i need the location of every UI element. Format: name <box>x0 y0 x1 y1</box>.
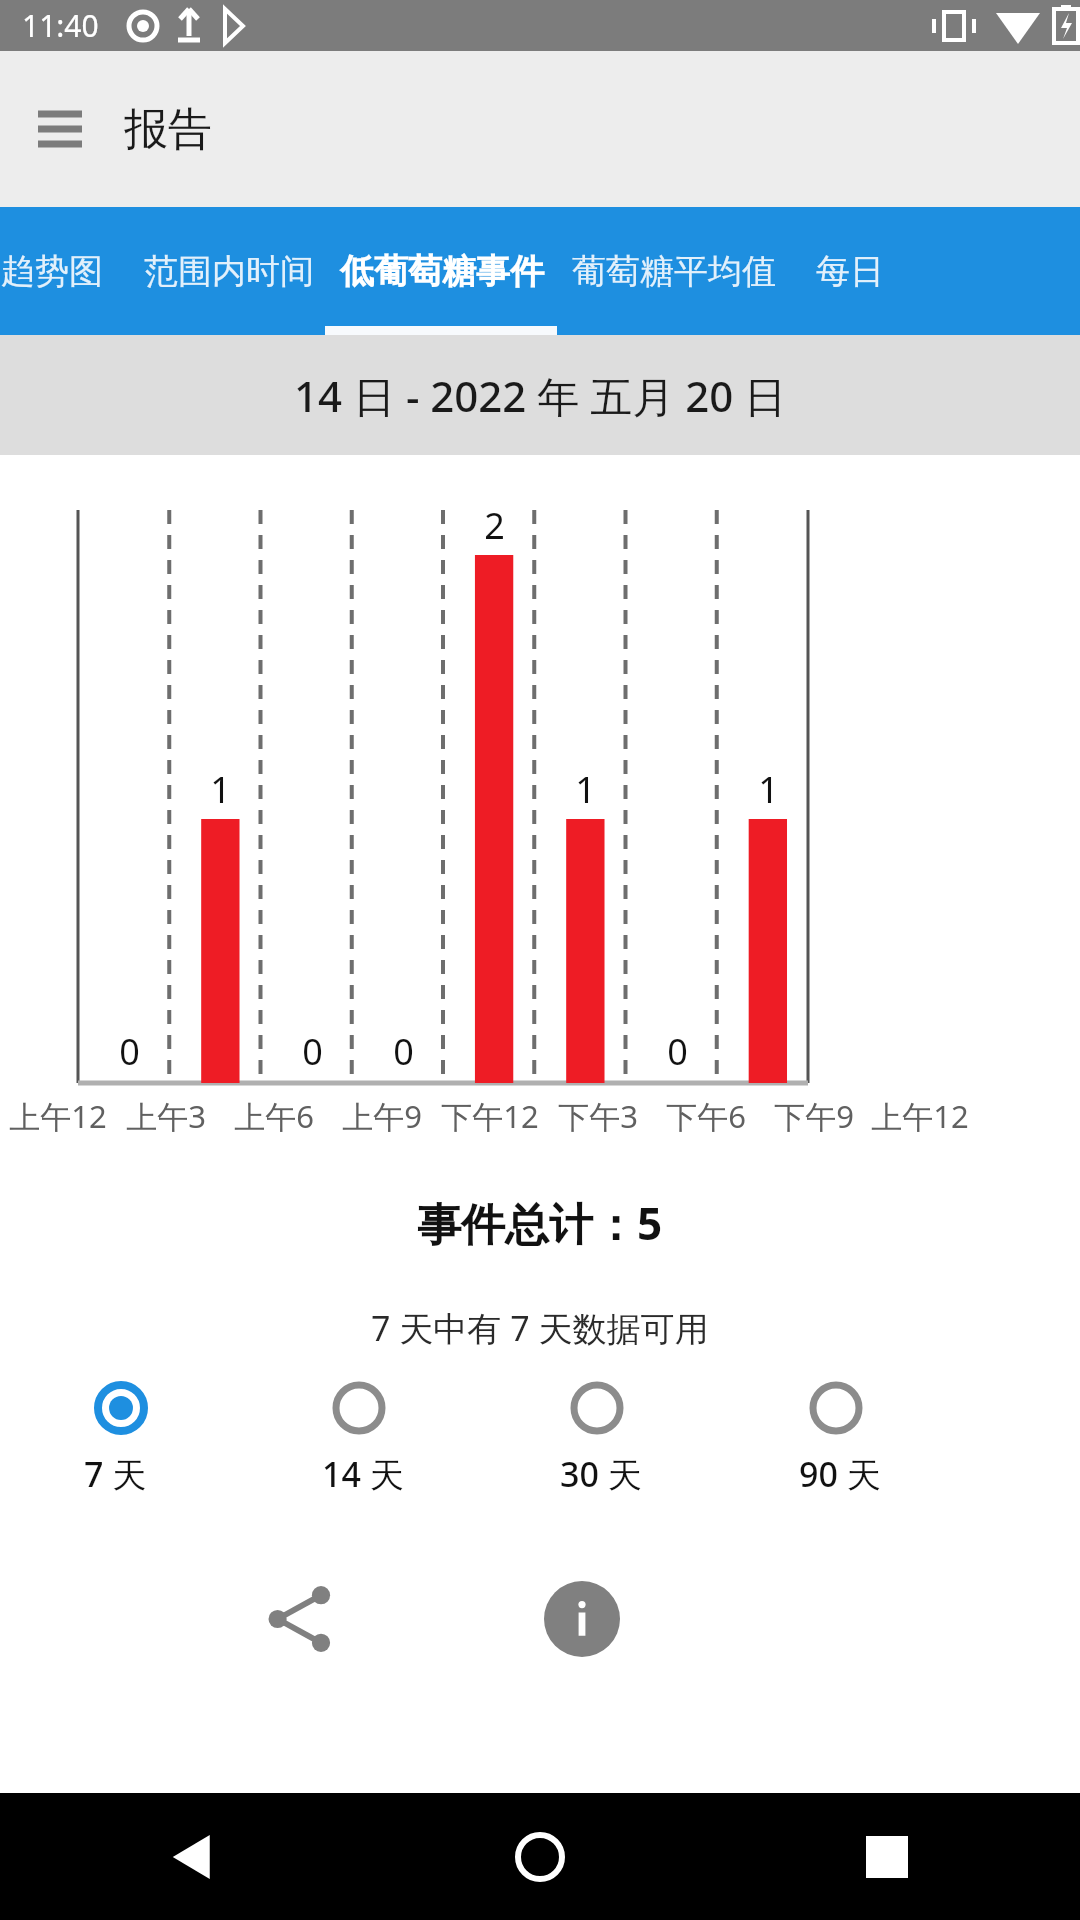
button[interactable]: 葡萄糖平均值 <box>558 207 790 335</box>
button[interactable]: 14 天 <box>252 1379 490 1497</box>
button[interactable]: 30 天 <box>490 1379 729 1497</box>
staticText: 1 <box>210 765 231 814</box>
staticText: 低葡萄糖事件 <box>340 250 544 293</box>
staticText: 上午12 <box>9 1095 107 1137</box>
staticText: 上午12 <box>871 1095 969 1137</box>
staticText: 0 <box>667 1027 688 1076</box>
button[interactable]: Home <box>495 1812 585 1902</box>
staticText: 7 天 <box>84 1451 147 1497</box>
staticText: 事件总计：5 <box>417 1193 663 1253</box>
button[interactable]: 范围内时间 <box>132 207 326 335</box>
staticText: 上午6 <box>234 1095 314 1137</box>
staticText: 下午3 <box>558 1095 638 1137</box>
staticText: 报告 <box>124 102 212 157</box>
staticText: 0 <box>302 1027 323 1076</box>
button[interactable]: 每日 <box>790 207 910 335</box>
button[interactable]: 90 天 <box>729 1379 968 1497</box>
button[interactable]: 低葡萄糖事件 <box>326 207 558 335</box>
button[interactable]: Open navigation menu <box>24 93 96 165</box>
staticText: 下午9 <box>774 1095 854 1137</box>
staticText: 0 <box>393 1027 414 1076</box>
button[interactable]: 7 天 <box>14 1379 252 1497</box>
staticText: 上午9 <box>342 1095 422 1137</box>
button[interactable]: Recent apps <box>842 1812 932 1902</box>
staticText: 1 <box>758 765 779 814</box>
button[interactable]: 趋势图 <box>0 207 118 335</box>
staticText: 下午6 <box>666 1095 746 1137</box>
staticText: 1 <box>575 765 596 814</box>
staticText: 2 <box>484 501 505 550</box>
staticText: 下午12 <box>441 1095 539 1137</box>
staticText: 90 天 <box>799 1451 881 1497</box>
staticText: 范围内时间 <box>144 250 314 293</box>
staticText: 0 <box>119 1027 140 1076</box>
staticText: 11:40 <box>22 5 99 46</box>
staticText: 14 天 <box>322 1451 404 1497</box>
staticText: 葡萄糖平均值 <box>572 250 776 293</box>
staticText: 14 日 - 2022 年 五月 20 日 <box>294 367 787 424</box>
button[interactable]: Information <box>522 1559 642 1679</box>
button[interactable]: Share <box>240 1559 360 1679</box>
staticText: 每日 <box>816 250 884 293</box>
staticText: 30 天 <box>560 1451 642 1497</box>
staticText: 7 天中有 7 天数据可用 <box>371 1305 709 1351</box>
staticText: 趋势图 <box>1 250 103 293</box>
staticText: 上午3 <box>126 1095 206 1137</box>
button[interactable]: Back <box>148 1812 238 1902</box>
